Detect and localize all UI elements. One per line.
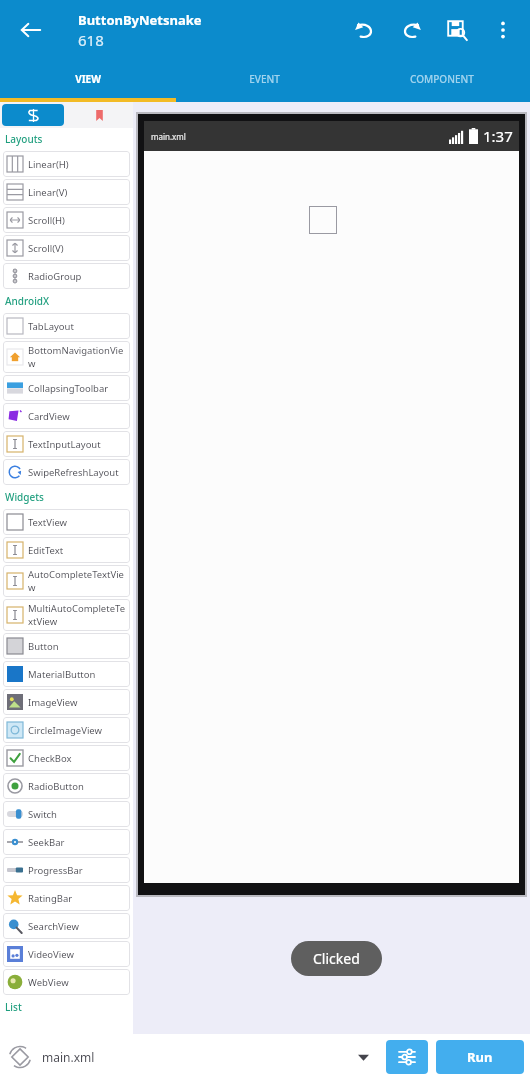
staticText: RatingBar [28, 892, 73, 905]
staticText: Switch [28, 808, 57, 821]
button[interactable]: Widgets palette [2, 104, 64, 126]
button[interactable]: SeekBar [3, 829, 130, 855]
staticText: Clicked [313, 949, 360, 968]
button[interactable]: Favorites palette [66, 102, 133, 128]
staticText: List [5, 1000, 22, 1014]
button[interactable]: Save [434, 7, 480, 53]
staticText: WebView [28, 976, 69, 989]
staticText: CollapsingToolbar [28, 382, 109, 395]
button[interactable]: BottomNavigationView [3, 341, 130, 373]
staticText: 618 [78, 30, 104, 50]
button[interactable]: Redo [388, 7, 434, 53]
staticText: main.xml [151, 131, 186, 142]
button[interactable]: TextView [3, 509, 130, 535]
staticText: Linear(V) [28, 186, 68, 199]
staticText: EVENT [249, 72, 280, 86]
button[interactable]: Run [436, 1040, 524, 1074]
button[interactable]: main.xml [0, 1034, 348, 1080]
button[interactable]: Settings [386, 1040, 428, 1074]
staticText: TextView [28, 516, 68, 529]
button[interactable]: CardView [3, 403, 130, 429]
staticText: ButtonByNetsnake [78, 11, 202, 29]
button[interactable]: Linear(V) [3, 179, 130, 205]
button[interactable]: WebView [3, 969, 130, 995]
staticText: RadioButton [28, 780, 84, 793]
staticText: VIEW [75, 72, 101, 86]
button[interactable]: CheckBox [3, 745, 130, 771]
button[interactable]: SwipeRefreshLayout [3, 459, 130, 485]
staticText: SwipeRefreshLayout [28, 466, 119, 479]
button[interactable]: RadioButton [3, 773, 130, 799]
button[interactable]: MaterialButton [3, 661, 130, 687]
button[interactable]: ImageView [3, 689, 130, 715]
button[interactable]: RadioGroup [3, 263, 130, 289]
button[interactable]: Select file [348, 1042, 378, 1072]
button[interactable]: COMPONENT [353, 60, 530, 98]
staticText: EditText [28, 544, 64, 557]
button[interactable]: MultiAutoCompleteTextView [3, 599, 130, 631]
button[interactable]: CollapsingToolbar [3, 375, 130, 401]
staticText: AndroidX [5, 294, 50, 308]
button[interactable]: TabLayout [3, 313, 130, 339]
staticText: TabLayout [28, 320, 74, 333]
button[interactable]: More options [480, 7, 526, 53]
button[interactable]: TextInputLayout [3, 431, 130, 457]
staticText: Linear(H) [28, 158, 69, 171]
staticText: Scroll(H) [28, 214, 65, 227]
staticText: MaterialButton [28, 668, 96, 681]
button[interactable]: EVENT [176, 60, 353, 98]
button[interactable]: Switch [3, 801, 130, 827]
button[interactable]: Scroll(H) [3, 207, 130, 233]
staticText: CircleImageView [28, 724, 102, 737]
staticText: ProgressBar [28, 864, 83, 877]
button[interactable]: Button [3, 633, 130, 659]
button[interactable]: AutoCompleteTextView [3, 565, 130, 597]
button[interactable]: Scroll(V) [3, 235, 130, 261]
button[interactable]: Back [10, 9, 52, 51]
staticText: Button [28, 640, 59, 653]
button[interactable]: Clicked [291, 941, 382, 976]
staticText: COMPONENT [410, 72, 474, 86]
button[interactable]: VIEW [0, 60, 176, 98]
staticText: AutoCompleteTextView [28, 568, 126, 594]
staticText: MultiAutoCompleteTextView [28, 602, 126, 628]
button[interactable]: CircleImageView [3, 717, 130, 743]
staticText: TextInputLayout [28, 438, 101, 451]
button[interactable]: EditText [3, 537, 130, 563]
button[interactable]: Undo [342, 7, 388, 53]
button[interactable]: SearchView [3, 913, 130, 939]
staticText: SearchView [28, 920, 79, 933]
button[interactable]: ProgressBar [3, 857, 130, 883]
staticText: CardView [28, 410, 70, 423]
staticText: 1:37 [483, 126, 513, 146]
staticText: Scroll(V) [28, 242, 64, 255]
staticText: VideoView [28, 948, 74, 961]
button[interactable]: RatingBar [3, 885, 130, 911]
button[interactable]: Button widget [309, 206, 337, 234]
staticText: main.xml [42, 1049, 95, 1065]
staticText: CheckBox [28, 752, 72, 765]
staticText: BottomNavigationView [28, 344, 126, 370]
staticText: SeekBar [28, 836, 65, 849]
staticText: ImageView [28, 696, 78, 709]
staticText: RadioGroup [28, 270, 82, 283]
button[interactable]: VideoView [3, 941, 130, 967]
staticText: Widgets [5, 490, 44, 504]
staticText: Run [467, 1048, 493, 1066]
staticText: Layouts [5, 132, 43, 146]
button[interactable]: Linear(H) [3, 151, 130, 177]
